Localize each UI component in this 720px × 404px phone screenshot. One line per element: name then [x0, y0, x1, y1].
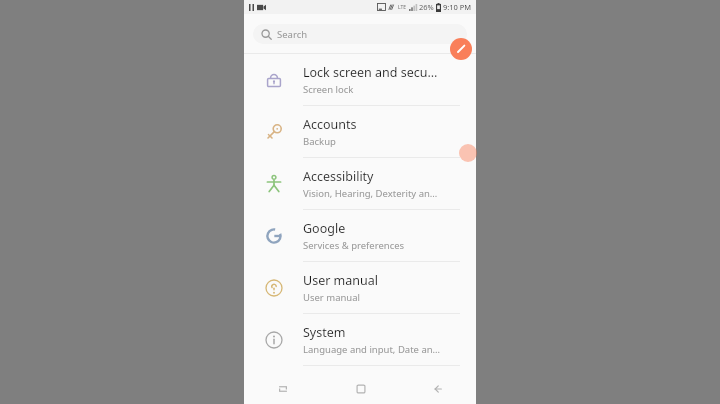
staticText: LTE: [398, 4, 407, 11]
staticText: Backup: [303, 135, 336, 148]
button[interactable]: Accessibility: [244, 158, 476, 209]
button[interactable]: Edit: [450, 38, 472, 60]
staticText: Search: [277, 28, 308, 41]
staticText: User manual: [303, 291, 360, 304]
button[interactable]: Recents: [244, 374, 322, 404]
staticText: Google: [303, 220, 346, 237]
staticText: Lock screen and secu…: [303, 64, 438, 81]
button[interactable]: Back: [399, 374, 476, 404]
staticText: Screen lock: [303, 83, 354, 96]
button[interactable]: User manual: [244, 262, 476, 313]
staticText: Accounts: [303, 116, 357, 133]
staticText: 26%: [419, 2, 434, 12]
button[interactable]: Google: [244, 210, 476, 261]
staticText: Vision, Hearing, Dexterity an…: [303, 187, 438, 200]
button[interactable]: Lock screen and secu…: [244, 54, 476, 105]
staticText: Services & preferences: [303, 239, 405, 252]
staticText: System: [303, 324, 346, 341]
staticText: Accessibility: [303, 168, 374, 185]
button[interactable]: Home: [322, 374, 399, 404]
staticText: Language and input, Date an…: [303, 343, 441, 356]
staticText: 9:10 PM: [443, 2, 472, 12]
button[interactable]: Accounts: [244, 106, 476, 157]
button[interactable]: System: [244, 314, 476, 365]
button[interactable]: Search: [253, 24, 467, 44]
staticText: User manual: [303, 272, 378, 289]
